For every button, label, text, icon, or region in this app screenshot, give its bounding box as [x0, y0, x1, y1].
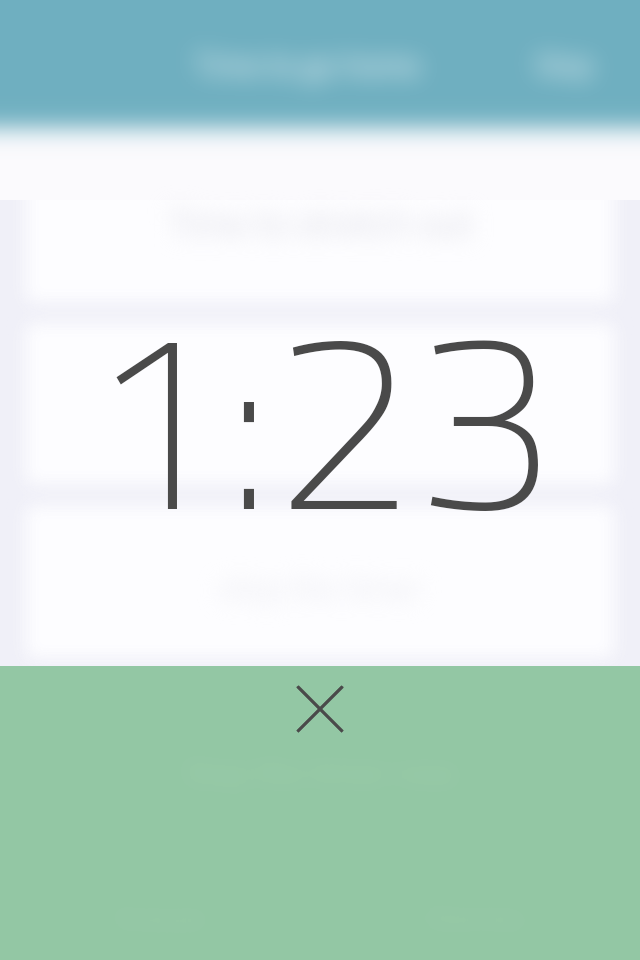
button[interactable]: Time to go home: [194, 26, 421, 103]
button[interactable]: Dismiss timer: [288, 677, 352, 741]
staticText: 1:23: [84, 223, 556, 606]
staticText: Stop: [535, 41, 594, 87]
staticText: Time to go home: [194, 40, 421, 89]
button[interactable]: Stop: [519, 27, 610, 101]
